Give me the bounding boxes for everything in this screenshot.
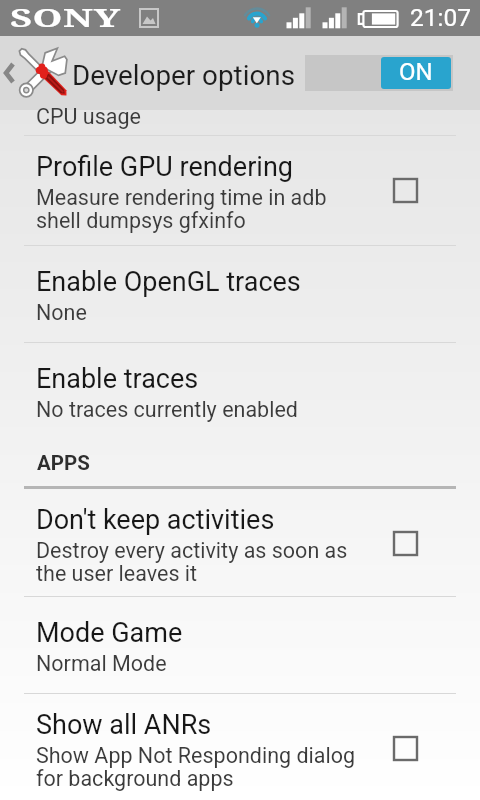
staticText: Enable OpenGL traces — [36, 266, 301, 298]
staticText: Profile GPU rendering — [36, 151, 293, 183]
button[interactable]: Show all ANRs — [393, 736, 418, 761]
button[interactable]: Show all ANRs — [0, 694, 480, 800]
button[interactable]: Enable OpenGL traces — [0, 246, 480, 342]
button[interactable]: Profile GPU rendering — [393, 178, 418, 203]
staticText: Don't keep activities — [36, 504, 275, 536]
staticText: APPS — [37, 451, 90, 475]
staticText: Show all ANRs — [36, 709, 212, 741]
staticText: No traces currently enabled — [36, 397, 298, 422]
staticText: 21:07 — [410, 3, 472, 32]
staticText: the user leaves it — [36, 561, 198, 586]
staticText: CPU usage — [36, 104, 141, 129]
staticText: Developer options — [72, 59, 295, 92]
staticText: for background apps — [36, 766, 234, 791]
staticText: None — [36, 300, 87, 325]
staticText: Measure rendering time in adb — [36, 185, 327, 210]
button[interactable]: Don't keep activities — [0, 489, 480, 596]
button[interactable]: Mode Game — [0, 597, 480, 693]
staticText: Destroy every activity as soon as — [36, 538, 348, 563]
button[interactable]: Back — [0, 36, 305, 110]
staticText: Show App Not Responding dialog — [36, 743, 356, 768]
button[interactable]: Profile GPU rendering — [0, 136, 480, 245]
staticText: Enable traces — [36, 363, 199, 395]
staticText: shell dumpsys gfxinfo — [36, 208, 246, 233]
button[interactable]: Developer options on — [305, 55, 453, 91]
staticText: Normal Mode — [36, 651, 167, 676]
button[interactable]: CPU usage — [0, 110, 480, 135]
staticText: Mode Game — [36, 617, 183, 649]
button[interactable]: Don't keep activities — [393, 531, 418, 556]
staticText: SONY — [10, 0, 121, 34]
button[interactable]: Enable traces — [0, 343, 480, 439]
staticText: ON — [399, 58, 433, 86]
other: Back — [0, 36, 19, 110]
